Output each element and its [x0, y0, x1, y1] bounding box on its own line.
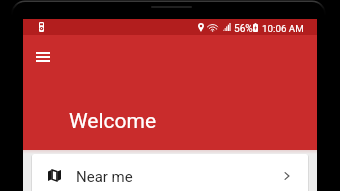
staticText: Near me [76, 168, 133, 186]
staticText: 10:06 AM [262, 23, 304, 34]
button[interactable]: Open navigation menu [30, 44, 56, 70]
staticText: 56% [234, 23, 253, 35]
button[interactable]: Near me [32, 154, 308, 191]
staticText: Welcome [69, 109, 157, 134]
